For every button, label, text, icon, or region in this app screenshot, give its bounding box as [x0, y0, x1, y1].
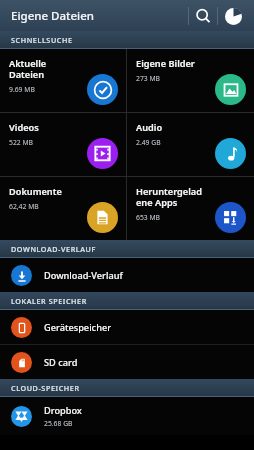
button[interactable]: Dropbox [0, 397, 254, 435]
staticText: Eigene Dateien [11, 8, 94, 24]
staticText: 62,42 MB [9, 202, 39, 211]
staticText: 9.69 MB [9, 85, 35, 94]
staticText: Audio [136, 121, 163, 134]
button[interactable]: Audio [127, 113, 254, 176]
staticText: 653 MB [136, 213, 161, 222]
staticText: Download-Verlauf [44, 269, 123, 282]
staticText: Heruntergelad ene Apps [136, 185, 202, 209]
button[interactable]: Eigene Bilder [127, 49, 254, 112]
button[interactable]: Download-Verlauf [0, 258, 254, 292]
button[interactable]: Dokumente [0, 177, 126, 240]
staticText: 522 MB [9, 138, 34, 147]
staticText: Aktuelle Dateien [9, 57, 47, 81]
staticText: 25.68 GB [44, 419, 73, 428]
staticText: LOKALER SPEICHER [11, 296, 87, 306]
button[interactable]: Videos [0, 113, 126, 176]
button[interactable]: Speichernutzung [218, 1, 248, 31]
staticText: Dokumente [9, 185, 62, 198]
staticText: Videos [9, 121, 39, 134]
staticText: Dropbox [44, 404, 82, 417]
staticText: DOWNLOAD-VERLAUF [11, 244, 96, 254]
button[interactable]: Aktuelle Dateien [0, 49, 126, 112]
staticText: SCHNELLSUCHE [11, 35, 73, 45]
staticText: CLOUD-SPEICHER [11, 383, 80, 393]
button[interactable]: Suchen [189, 2, 217, 30]
button[interactable]: SD card [0, 345, 254, 379]
button[interactable]: Gerätespeicher [0, 310, 254, 344]
staticText: Eigene Bilder [136, 57, 195, 70]
staticText: 2.49 GB [136, 138, 161, 147]
staticText: Gerätespeicher [44, 321, 112, 334]
button[interactable]: Heruntergelad ene Apps [127, 177, 254, 240]
staticText: 273 MB [136, 74, 161, 83]
staticText: SD card [44, 356, 78, 369]
